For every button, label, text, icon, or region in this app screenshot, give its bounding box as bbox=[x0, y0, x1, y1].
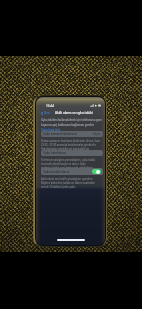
staticText: Akıllı alarm seni hafif uykudayken uyand… bbox=[41, 177, 93, 180]
staticText: boyunca şarj kablosuna bağlaman gerekir. bbox=[41, 123, 95, 127]
staticText: Uyku takibini kullanabilmek için telefon… bbox=[41, 118, 103, 122]
staticText: 16:44 bbox=[46, 104, 55, 108]
staticText: Daha fazla bilgi bbox=[41, 128, 61, 132]
staticText: Akıllı alarm ve uyku takibi bbox=[55, 111, 93, 115]
button[interactable]: Uyku zamanı hatırlatıcısı bbox=[41, 131, 103, 137]
staticText: önceki 30 dakika içinde çalar. bbox=[41, 185, 76, 188]
staticText: Böylece daha dinç kalkarsın. Alarm saati… bbox=[41, 181, 95, 184]
other: Uykuda akıllı alarm bbox=[92, 169, 101, 174]
staticText: 23:30 - 07:00 arasında hatırlatmalar gön… bbox=[41, 143, 97, 146]
staticText: Uyku hatırlatıcısı bbox=[43, 151, 67, 155]
staticText: otomatik olarak başlar ve durur. Uyku bbox=[41, 162, 86, 165]
staticText: verilerini Sağlık uygulamasında görebili… bbox=[41, 166, 94, 169]
button[interactable]: Uyku hatırlatıcısı bbox=[41, 150, 103, 156]
staticText: Yatma zamanını hatırlatan bildirimler al… bbox=[41, 139, 100, 142]
staticText: Hatırlatmaları istediğin an kapatabilirs… bbox=[41, 147, 90, 150]
staticText: Uykuda akıllı alarm bbox=[43, 170, 70, 174]
staticText: Uyku zamanı hatırlatıcısı bbox=[43, 132, 77, 136]
staticText: Telefonun yatağının yanındayken, uyku ta… bbox=[41, 158, 95, 161]
button[interactable]: Uykuda akıllı alarm bbox=[41, 168, 103, 175]
staticText: Kapalı bbox=[93, 132, 101, 136]
button[interactable]: Geri bbox=[41, 111, 50, 115]
staticText: Geri bbox=[44, 111, 50, 115]
